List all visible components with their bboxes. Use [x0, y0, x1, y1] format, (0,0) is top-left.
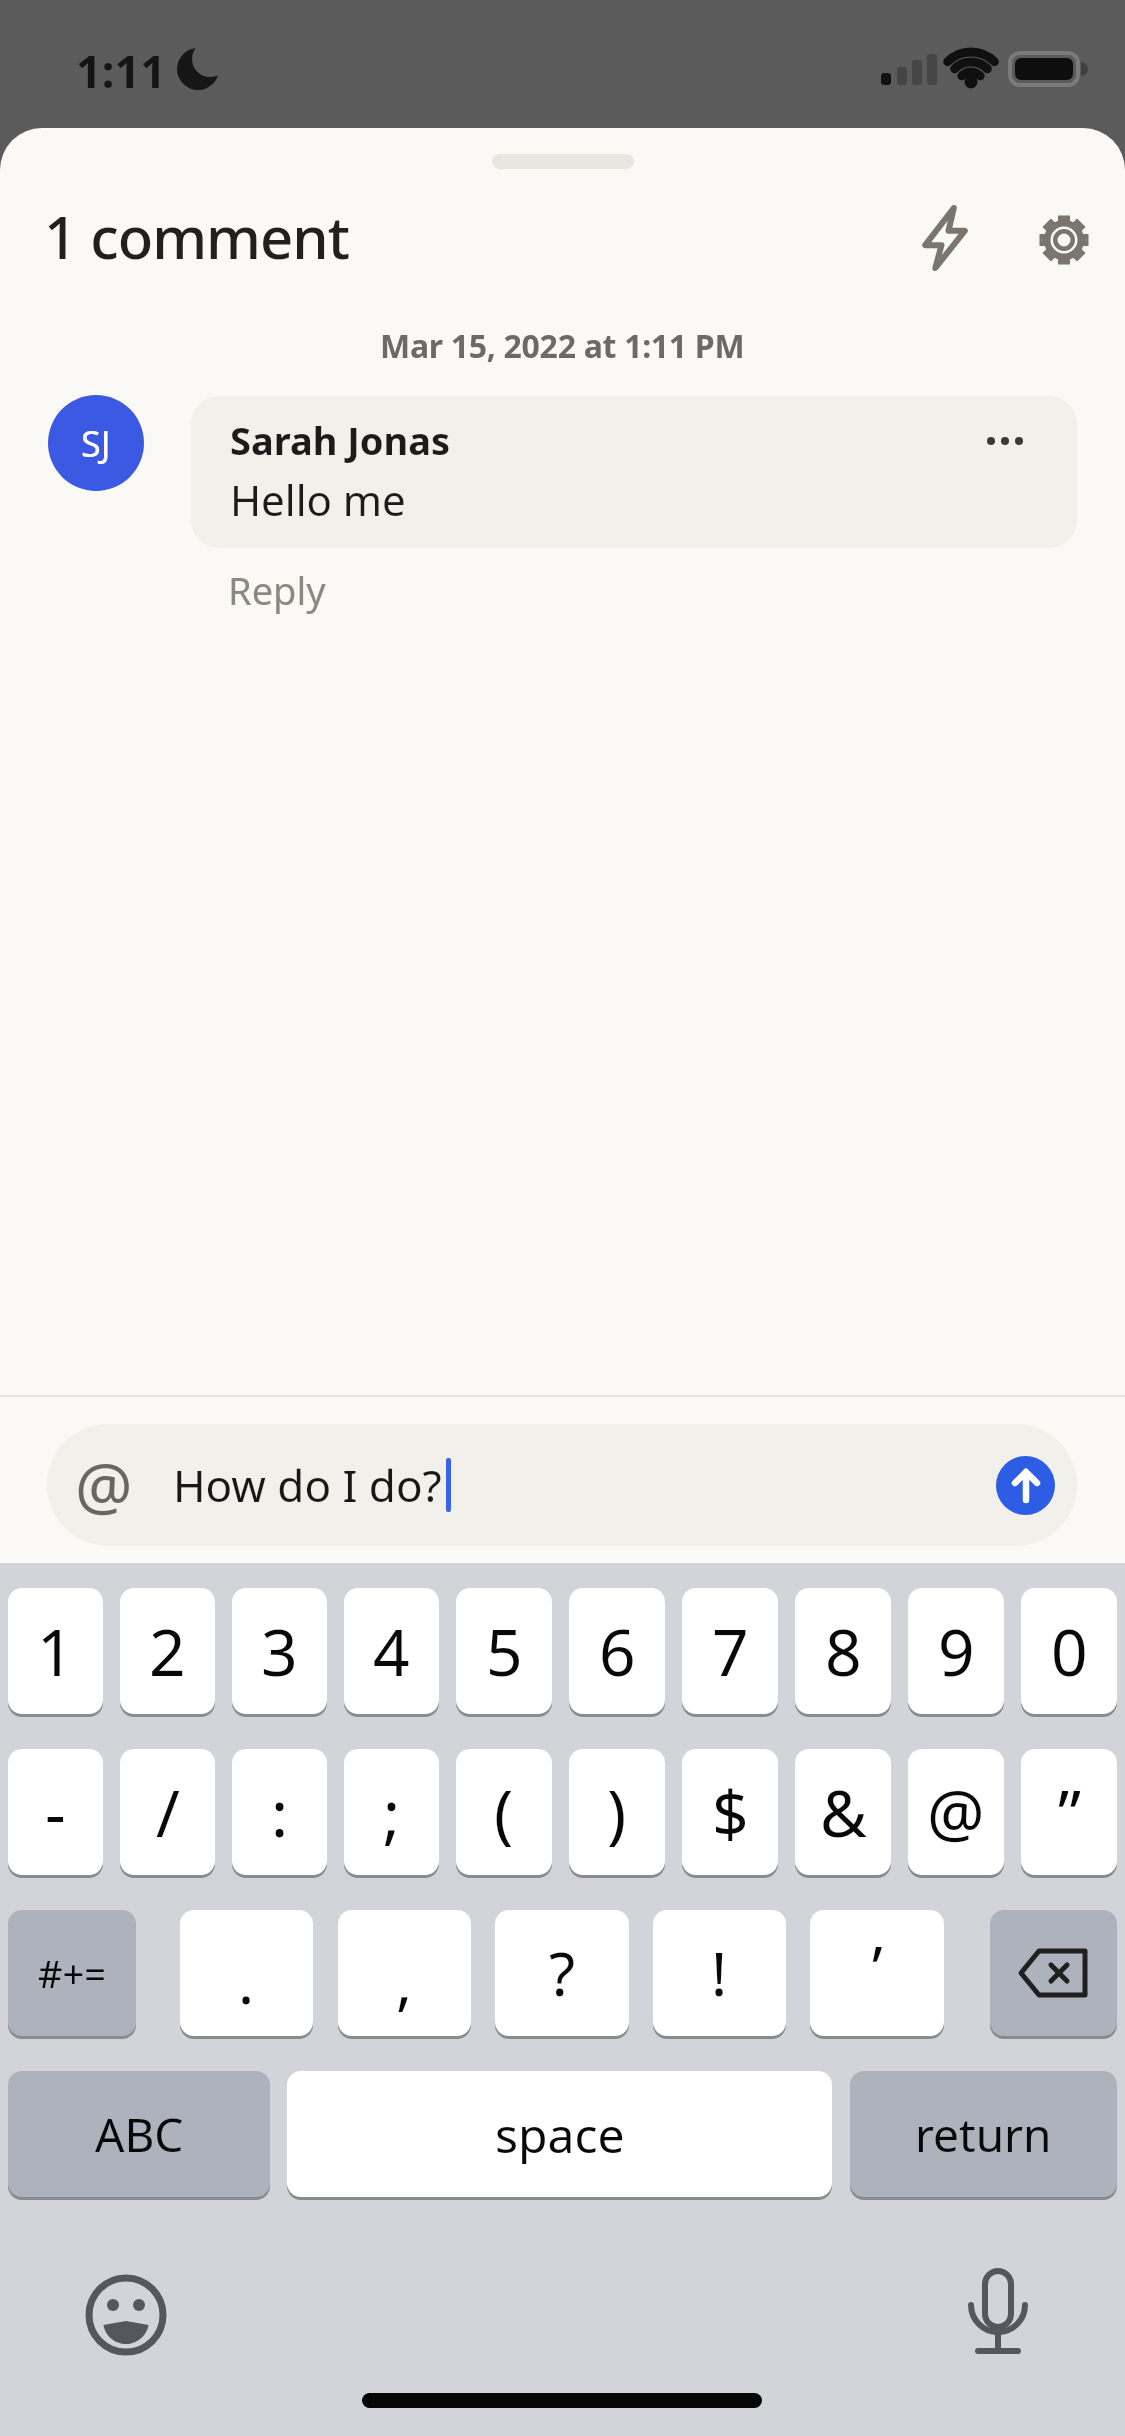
staticText: ’: [872, 1926, 883, 2008]
staticText: /: [156, 1769, 180, 1856]
staticText: -: [45, 1769, 66, 1856]
staticText: !: [711, 1932, 728, 2014]
button[interactable]: #+=: [8, 1910, 136, 2036]
staticText: 2: [149, 1608, 186, 1695]
button[interactable]: 6: [569, 1588, 665, 1714]
staticText: :: [271, 1769, 289, 1856]
button[interactable]: ABC: [8, 2071, 270, 2197]
button[interactable]: 4: [344, 1588, 439, 1714]
button[interactable]: 5: [456, 1588, 552, 1714]
button[interactable]: .: [180, 1910, 313, 2036]
staticText: 0: [1051, 1608, 1088, 1695]
button[interactable]: [990, 1910, 1117, 2036]
button[interactable]: [86, 2275, 166, 2355]
button[interactable]: ”: [1021, 1749, 1117, 1875]
button[interactable]: !: [653, 1910, 786, 2036]
staticText: #+=: [38, 1947, 107, 1999]
staticText: &: [820, 1769, 867, 1856]
button[interactable]: 0: [1021, 1588, 1117, 1714]
staticText: 1:11: [76, 40, 166, 101]
staticText: 8: [825, 1608, 862, 1695]
staticText: @: [927, 1769, 985, 1856]
staticText: Reply: [228, 564, 326, 616]
staticText: Mar 15, 2022 at 1:11 PM: [380, 324, 745, 368]
staticText: ?: [549, 1932, 576, 2014]
button[interactable]: @: [47, 1424, 1077, 1546]
button[interactable]: [996, 1456, 1055, 1515]
staticText: ”: [1058, 1769, 1081, 1856]
button[interactable]: 8: [795, 1588, 891, 1714]
button[interactable]: [958, 2267, 1038, 2363]
button[interactable]: 2: [120, 1588, 215, 1714]
button[interactable]: (: [456, 1749, 552, 1875]
button[interactable]: Sarah Jonas: [191, 396, 1077, 548]
button[interactable]: [1028, 204, 1100, 276]
button[interactable]: 7: [682, 1588, 778, 1714]
staticText: 9: [938, 1608, 975, 1695]
staticText: 1 comment: [44, 197, 349, 276]
staticText: ;: [383, 1769, 401, 1856]
staticText: (: [494, 1769, 514, 1856]
staticText: 3: [261, 1608, 298, 1695]
staticText: return: [915, 2103, 1052, 2166]
button[interactable]: ;: [344, 1749, 439, 1875]
staticText: SJ: [81, 419, 111, 468]
button[interactable]: @: [908, 1749, 1004, 1875]
staticText: space: [495, 2102, 625, 2167]
button[interactable]: :: [232, 1749, 327, 1875]
button[interactable]: Reply: [228, 564, 326, 616]
staticText: 4: [373, 1608, 410, 1695]
staticText: How do I do?: [173, 1455, 442, 1515]
button[interactable]: ?: [495, 1910, 629, 2036]
button[interactable]: space: [287, 2071, 832, 2197]
button[interactable]: -: [8, 1749, 103, 1875]
button[interactable]: [909, 202, 981, 274]
button[interactable]: $: [682, 1749, 778, 1875]
staticText: Hello me: [230, 471, 406, 528]
staticText: 5: [486, 1608, 523, 1695]
staticText: .: [238, 1940, 255, 2022]
staticText: 7: [712, 1608, 749, 1695]
staticText: ,: [396, 1940, 413, 2022]
button[interactable]: 1: [8, 1588, 103, 1714]
button[interactable]: return: [850, 2071, 1117, 2197]
staticText: Sarah Jonas: [230, 414, 451, 466]
button[interactable]: /: [120, 1749, 215, 1875]
staticText: ): [607, 1769, 627, 1856]
button[interactable]: ’: [810, 1910, 944, 2036]
staticText: @: [75, 1442, 133, 1529]
button[interactable]: ): [569, 1749, 665, 1875]
button[interactable]: 3: [232, 1588, 327, 1714]
staticText: 6: [599, 1608, 636, 1695]
button[interactable]: ,: [338, 1910, 471, 2036]
button[interactable]: &: [795, 1749, 891, 1875]
staticText: $: [712, 1769, 749, 1856]
staticText: 1: [37, 1608, 74, 1695]
button[interactable]: 9: [908, 1588, 1004, 1714]
staticText: ABC: [95, 2103, 184, 2166]
